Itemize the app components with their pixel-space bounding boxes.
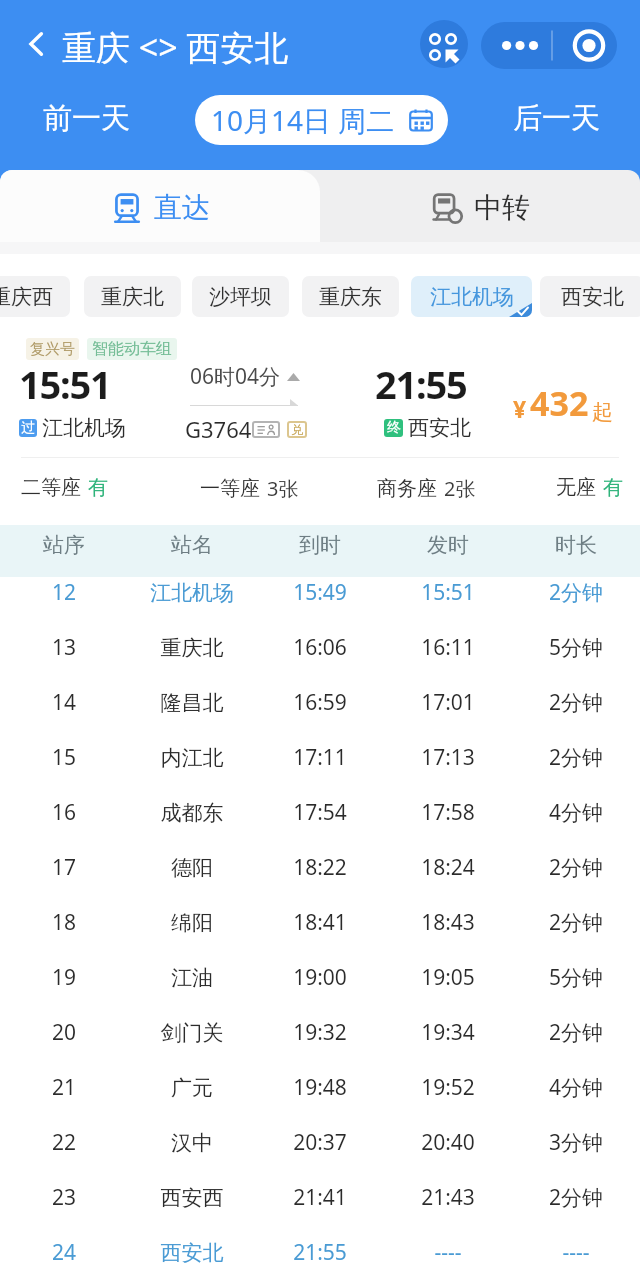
button[interactable]: 无座 — [556, 475, 623, 500]
staticText: 后一天 — [513, 100, 600, 137]
staticText: 中转 — [474, 190, 530, 225]
staticText: 3分钟 — [512, 1128, 640, 1157]
staticText: ¥ — [513, 393, 527, 424]
button[interactable]: 12 — [0, 565, 640, 620]
staticText: 19:52 — [384, 1073, 512, 1102]
staticText: 商务座 — [377, 476, 437, 501]
staticText: 江北机场 — [128, 580, 256, 606]
staticText: 19:00 — [256, 963, 384, 992]
staticText: 智能动车组 — [92, 339, 172, 359]
staticText: 16:06 — [256, 633, 384, 662]
button[interactable]: 中转 — [320, 170, 640, 254]
staticText: 到时 — [256, 532, 384, 558]
staticText: 18:41 — [256, 908, 384, 937]
staticText: 20:37 — [256, 1128, 384, 1157]
staticText: 21 — [0, 1073, 128, 1102]
staticText: 重庆西 — [0, 284, 53, 310]
button[interactable]: 沙坪坝 — [192, 276, 289, 317]
staticText: 江油 — [128, 965, 256, 991]
button[interactable]: 直达 — [0, 170, 320, 254]
staticText: 18:22 — [256, 853, 384, 882]
staticText: 2分钟 — [512, 688, 640, 717]
staticText: 西安北 — [561, 284, 624, 310]
staticText: 复兴号 — [30, 340, 75, 359]
staticText: 汉中 — [128, 1130, 256, 1156]
staticText: G3764 — [185, 414, 252, 444]
button[interactable]: 17 — [0, 840, 640, 895]
button[interactable]: 21 — [0, 1060, 640, 1115]
button[interactable]: 23 — [0, 1170, 640, 1225]
staticText: 西安北 — [128, 1240, 256, 1266]
staticText: 19:34 — [384, 1018, 512, 1047]
button[interactable]: 24 — [0, 1225, 640, 1280]
staticText: 二等座 — [21, 475, 81, 500]
staticText: 重庆 <> 西安北 — [62, 24, 289, 70]
staticText: 12 — [0, 578, 128, 607]
staticText: 18:24 — [384, 853, 512, 882]
staticText: 发时 — [384, 532, 512, 558]
staticText: 江北机场 — [42, 415, 126, 441]
staticText: 站名 — [128, 532, 256, 558]
staticText: 过 — [21, 419, 35, 437]
staticText: 起 — [592, 399, 613, 425]
button[interactable]: 重庆西 — [0, 276, 70, 317]
staticText: 重庆北 — [101, 284, 164, 310]
staticText: 5分钟 — [512, 633, 640, 662]
button[interactable]: 重庆东 — [302, 276, 399, 317]
staticText: 有 — [88, 475, 108, 500]
button[interactable]: 二等座 — [21, 475, 108, 500]
staticText: 2分钟 — [512, 908, 640, 937]
button[interactable]: 后一天 — [510, 96, 602, 140]
staticText: 10月14日 周二 — [211, 101, 395, 139]
button[interactable]: Mini program menu — [420, 20, 468, 68]
staticText: 江北机场 — [430, 284, 514, 310]
staticText: 3张 — [267, 475, 299, 502]
staticText: 德阳 — [128, 855, 256, 881]
button[interactable]: 20 — [0, 1005, 640, 1060]
staticText: 22 — [0, 1128, 128, 1157]
button[interactable]: More options — [481, 22, 617, 69]
staticText: 绵阳 — [128, 910, 256, 936]
button[interactable]: Back — [14, 22, 58, 66]
button[interactable]: 商务座 — [377, 475, 476, 502]
button[interactable]: 重庆北 — [84, 276, 181, 317]
button[interactable]: 13 — [0, 620, 640, 675]
button[interactable]: 14 — [0, 675, 640, 730]
staticText: 19 — [0, 963, 128, 992]
staticText: 重庆东 — [319, 284, 382, 310]
staticText: 17:11 — [256, 743, 384, 772]
staticText: 4分钟 — [512, 1073, 640, 1102]
button[interactable]: 前一天 — [40, 96, 132, 140]
staticText: 站序 — [0, 532, 128, 558]
staticText: 时长 — [512, 532, 640, 558]
staticText: 432 — [530, 380, 589, 426]
staticText: 15:51 — [19, 358, 111, 410]
staticText: 21:43 — [384, 1183, 512, 1212]
staticText: 西安北 — [408, 415, 471, 441]
button[interactable]: 江北机场 — [411, 276, 532, 317]
button[interactable]: 18 — [0, 895, 640, 950]
staticText: 2分钟 — [512, 1018, 640, 1047]
button[interactable]: 16 — [0, 785, 640, 840]
staticText: 5分钟 — [512, 963, 640, 992]
button[interactable]: 一等座 — [200, 475, 299, 502]
staticText: 沙坪坝 — [209, 284, 272, 310]
button[interactable]: 西安北 — [540, 276, 640, 317]
staticText: 17:54 — [256, 798, 384, 827]
staticText: 16:59 — [256, 688, 384, 717]
staticText: 06时04分 — [190, 362, 281, 391]
staticText: 18 — [0, 908, 128, 937]
staticText: 西安西 — [128, 1185, 256, 1211]
staticText: 前一天 — [43, 100, 130, 137]
button[interactable]: 19 — [0, 950, 640, 1005]
staticText: 15:51 — [384, 578, 512, 607]
staticText: 23 — [0, 1183, 128, 1212]
button[interactable]: 22 — [0, 1115, 640, 1170]
button[interactable]: 15 — [0, 730, 640, 785]
staticText: 17:13 — [384, 743, 512, 772]
staticText: 2分钟 — [512, 743, 640, 772]
staticText: 广元 — [128, 1075, 256, 1101]
staticText: 18:43 — [384, 908, 512, 937]
staticText: 直达 — [154, 190, 210, 225]
button[interactable]: 10月14日 周二 — [195, 95, 448, 145]
